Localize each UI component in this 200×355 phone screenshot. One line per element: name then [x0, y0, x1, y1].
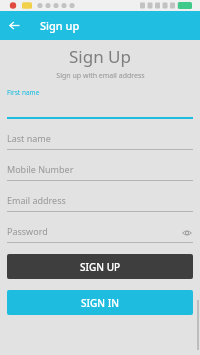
button[interactable]: Show password [181, 227, 193, 239]
staticText: SIGN IN [81, 296, 119, 310]
staticText: First name [7, 88, 40, 97]
staticText: SIGN UP [80, 260, 121, 274]
button[interactable]: SIGN IN [7, 290, 193, 315]
staticText: Sign Up [69, 45, 131, 68]
button[interactable]: SIGN UP [7, 254, 193, 279]
button[interactable]: Last name [7, 119, 193, 150]
staticText: Password [7, 225, 48, 237]
button[interactable]: Password [7, 212, 193, 243]
button[interactable]: Back [0, 11, 29, 40]
button[interactable]: Mobile Number [7, 150, 193, 181]
staticText: Sign up with email address [56, 71, 145, 81]
button[interactable]: Email address [7, 181, 193, 212]
staticText: Last name [7, 132, 51, 144]
staticText: Sign up [40, 18, 80, 33]
staticText: Mobile Number [7, 163, 74, 175]
staticText: Email address [7, 194, 66, 206]
